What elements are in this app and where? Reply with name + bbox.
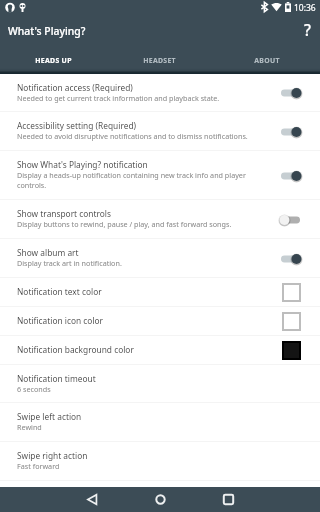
staticText: What's Playing?: [8, 24, 86, 38]
button[interactable]: HEADSET: [106, 46, 213, 74]
button[interactable]: Switch on: [281, 86, 300, 100]
button[interactable]: Choose colour: [283, 342, 300, 359]
button[interactable]: Notification text color: [0, 278, 320, 307]
button[interactable]: Choose colour: [283, 284, 300, 301]
staticText: Notification timeout: [17, 373, 96, 384]
button[interactable]: Notification background color: [0, 336, 320, 365]
staticText: Accessibility setting (Required): [17, 120, 137, 131]
staticText: Display a heads-up notification containi…: [17, 170, 253, 190]
staticText: Display track art in notification.: [17, 258, 122, 268]
button[interactable]: Swipe right action: [0, 442, 320, 481]
staticText: Needed to get current track information …: [17, 93, 220, 103]
staticText: 6 seconds: [17, 384, 51, 394]
button[interactable]: Switch on: [281, 125, 300, 139]
staticText: Show album art: [17, 247, 79, 258]
staticText: Notification icon color: [17, 315, 104, 326]
button[interactable]: Back: [71, 487, 113, 512]
staticText: Swipe right action: [17, 450, 88, 461]
staticText: Notification text color: [17, 286, 102, 297]
staticText: Fast forward: [17, 461, 60, 471]
staticText: HEADSET: [143, 56, 176, 65]
button[interactable]: Help: [294, 18, 320, 46]
staticText: Needed to avoid disruptive notifications…: [17, 131, 248, 141]
staticText: HEADS UP: [35, 56, 72, 65]
staticText: ?: [304, 19, 311, 40]
button[interactable]: Home: [139, 487, 181, 512]
button[interactable]: Notification timeout: [0, 365, 320, 403]
button[interactable]: Switch on: [281, 252, 300, 266]
button[interactable]: ABOUT: [213, 46, 320, 74]
staticText: Notification access (Required): [17, 82, 133, 93]
button[interactable]: Choose colour: [283, 313, 300, 330]
staticText: Swipe left action: [17, 411, 82, 422]
button[interactable]: Show transport controls: [0, 200, 320, 239]
staticText: Show What's Playing? notification: [17, 159, 148, 170]
button[interactable]: Switch off: [281, 213, 300, 227]
button[interactable]: Recents: [207, 487, 249, 512]
button[interactable]: HEADS UP: [0, 46, 106, 74]
button[interactable]: Swipe left action: [0, 403, 320, 442]
button[interactable]: Notification icon color: [0, 307, 320, 336]
staticText: ABOUT: [254, 56, 280, 65]
staticText: Notification background color: [17, 344, 134, 355]
staticText: 10:36: [294, 2, 316, 14]
button[interactable]: Notification access (Required): [0, 74, 320, 112]
button[interactable]: Show album art: [0, 239, 320, 278]
staticText: Display buttons to rewind, pause / play,…: [17, 219, 232, 229]
staticText: Rewind: [17, 422, 42, 432]
button[interactable]: Switch on: [281, 169, 300, 183]
staticText: Show transport controls: [17, 208, 111, 219]
button[interactable]: Accessibility setting (Required): [0, 112, 320, 151]
button[interactable]: Show What's Playing? notification: [0, 151, 320, 200]
